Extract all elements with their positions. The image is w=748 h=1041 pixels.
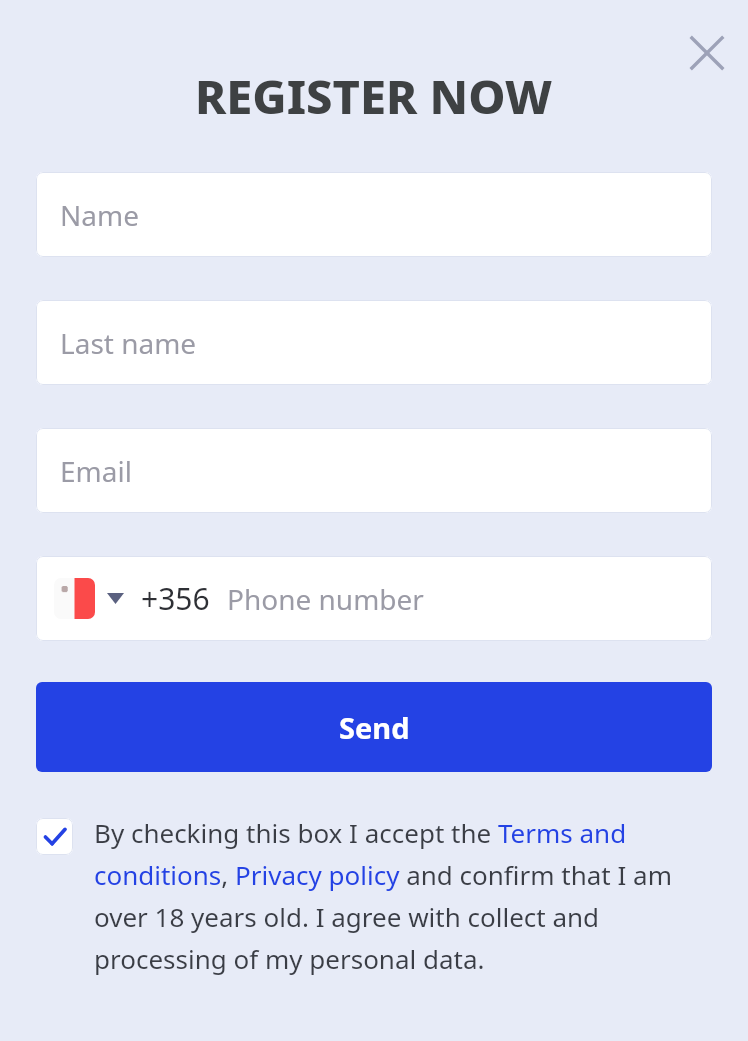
button[interactable]: By checking this box I accept the Terms … bbox=[94, 815, 714, 977]
staticText: Name bbox=[60, 196, 139, 234]
button[interactable]: Name bbox=[36, 172, 712, 257]
staticText: Phone number bbox=[227, 580, 424, 618]
staticText: Last name bbox=[60, 324, 197, 362]
button[interactable]: Email bbox=[36, 428, 712, 513]
button[interactable]: Accept terms checkbox bbox=[36, 818, 73, 855]
button[interactable]: Send bbox=[36, 682, 712, 772]
staticText: REGISTER NOW bbox=[195, 64, 553, 128]
staticText: +356 bbox=[141, 578, 210, 619]
staticText: Email bbox=[60, 452, 132, 490]
button[interactable]: Last name bbox=[36, 300, 712, 385]
button[interactable]: Country Malta bbox=[36, 556, 712, 641]
other: Country Malta bbox=[54, 578, 95, 619]
button[interactable]: Close bbox=[677, 23, 737, 83]
staticText: By checking this box I accept the Terms … bbox=[94, 815, 714, 977]
staticText: Send bbox=[339, 708, 410, 747]
